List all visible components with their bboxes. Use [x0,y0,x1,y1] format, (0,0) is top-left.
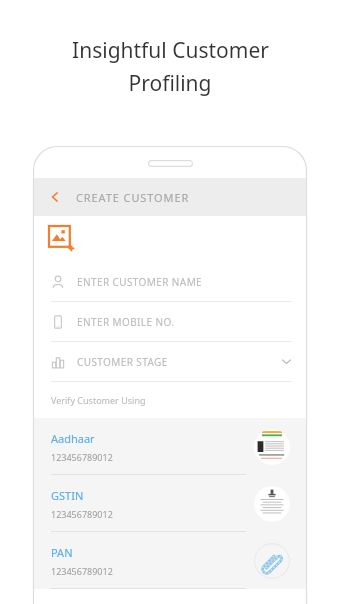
staticText: Aadhaar [51,431,95,446]
staticText: 123456789012 [51,508,113,520]
staticText: 123456789012 [51,565,113,577]
staticText: 123456789012 [51,451,113,463]
button[interactable]: ENTER CUSTOMER NAME [34,262,306,302]
staticText: ENTER MOBILE NO. [77,315,175,329]
button[interactable]: Aadhaar [34,418,306,475]
button[interactable]: PAN [34,532,306,589]
staticText: PAN [51,545,73,560]
staticText: ENTER CUSTOMER NAME [77,275,203,289]
staticText: Profiling [128,69,212,98]
button[interactable]: View document [254,429,290,465]
staticText: Insightful Customer [72,36,269,65]
staticText: Verify Customer Using [51,394,146,406]
button[interactable]: Attach document [254,543,290,579]
button[interactable]: CUSTOMER STAGE [34,342,306,382]
staticText: CUSTOMER STAGE [77,355,168,369]
button[interactable]: View document [254,486,290,522]
button[interactable]: GSTIN [34,475,306,532]
button[interactable]: ENTER MOBILE NO. [34,302,306,342]
staticText: GSTIN [51,488,84,503]
button[interactable]: Back [44,186,66,208]
staticText: CREATE CUSTOMER [76,190,190,205]
button[interactable]: Add customer photo [49,226,75,252]
